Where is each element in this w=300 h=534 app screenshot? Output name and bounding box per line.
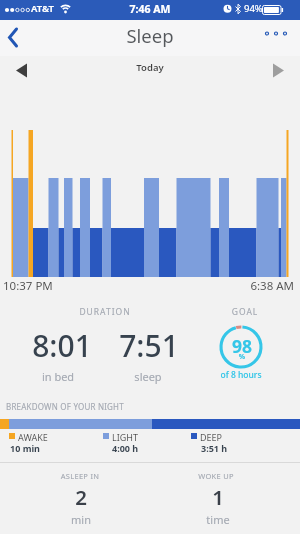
staticText: 2 (56, 483, 106, 511)
staticText: 3:51 h (201, 442, 228, 454)
staticText: time (193, 512, 243, 527)
staticText: 8:01 (7, 325, 117, 366)
staticText: 4:00 h (112, 442, 139, 454)
staticText: AWAKE (18, 431, 48, 443)
staticText: sleep (113, 369, 183, 384)
staticText: min (56, 512, 106, 527)
button[interactable] (10, 58, 36, 86)
staticText: 7:51 (94, 325, 204, 366)
staticText: in bed (23, 369, 93, 384)
staticText: 94% (244, 2, 263, 15)
staticText: 1 (193, 483, 243, 511)
staticText: ASLEEP IN (35, 471, 125, 481)
staticText: AT&T (31, 2, 54, 15)
staticText: % (220, 352, 264, 362)
staticText: LIGHT (112, 431, 138, 443)
staticText: GOAL (205, 306, 285, 318)
staticText: 10:37 PM (3, 278, 53, 294)
button[interactable] (0, 22, 30, 52)
staticText: Sleep (90, 23, 210, 48)
staticText: DURATION (45, 306, 165, 318)
button[interactable] (260, 27, 292, 41)
staticText: WOKE UP (171, 471, 261, 481)
staticText: BREAKDOWN OF YOUR NIGHT (6, 401, 124, 412)
button[interactable] (264, 58, 290, 86)
button[interactable] (217, 323, 265, 371)
staticText: 10 min (10, 442, 40, 454)
staticText: DEEP (200, 431, 223, 443)
staticText: of 8 hours (196, 369, 286, 381)
staticText: 6:38 AM (234, 278, 294, 294)
staticText: Today (105, 61, 195, 74)
staticText: 98 (220, 334, 264, 358)
staticText: 7:46 AM (105, 2, 195, 16)
